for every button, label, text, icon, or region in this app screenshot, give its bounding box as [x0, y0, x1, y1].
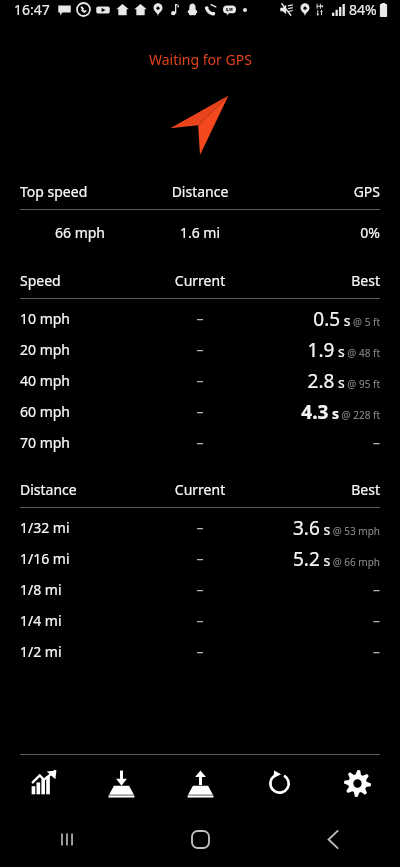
staticText: 1/2 mi	[20, 642, 140, 661]
staticText: 1/16 mi	[20, 549, 140, 568]
button[interactable]: Statistics	[7, 755, 79, 811]
button[interactable]: 20 mph	[20, 334, 380, 365]
staticText: 4.3 s @ 228 ft	[260, 399, 380, 425]
button[interactable]: Export	[164, 755, 236, 811]
staticText: Current	[140, 271, 260, 290]
staticText: –	[140, 611, 260, 630]
staticText: 16:47	[14, 0, 50, 19]
button[interactable]: 1/16 mi	[20, 543, 380, 574]
button[interactable]: 70 mph	[20, 427, 380, 458]
staticText: –	[140, 309, 260, 328]
staticText: –	[140, 642, 260, 661]
staticText: –	[140, 402, 260, 421]
staticText: 10 mph	[20, 309, 140, 328]
staticText: –	[140, 549, 260, 568]
staticText: –	[260, 611, 380, 630]
staticText: Speed	[20, 271, 140, 290]
button[interactable]: 1/32 mi	[20, 512, 380, 543]
staticText: –	[260, 642, 380, 661]
staticText: Top speed	[20, 182, 140, 201]
staticText: Waiting for GPS	[149, 50, 252, 69]
staticText: 0%	[260, 223, 380, 242]
staticText: Best	[260, 271, 380, 290]
button[interactable]: Home	[134, 811, 267, 867]
button[interactable]: Recents	[0, 811, 134, 867]
staticText: GPS	[260, 182, 380, 201]
staticText: Distance	[20, 480, 140, 499]
staticText: 3.6 s @ 53 mph	[260, 515, 380, 541]
staticText: 1.6 mi	[140, 223, 260, 242]
button[interactable]: 1/4 mi	[20, 605, 380, 636]
button[interactable]: 1/8 mi	[20, 574, 380, 605]
button[interactable]: Reset	[243, 755, 315, 811]
staticText: Distance	[140, 182, 260, 201]
staticText: 1.9 s @ 48 ft	[260, 337, 380, 363]
staticText: –	[140, 580, 260, 599]
staticText: –	[260, 580, 380, 599]
button[interactable]: 40 mph	[20, 365, 380, 396]
staticText: –	[140, 371, 260, 390]
staticText: –	[260, 433, 380, 452]
staticText: 66 mph	[20, 223, 140, 242]
staticText: 2.8 s @ 95 ft	[260, 368, 380, 394]
staticText: 5.2 s @ 66 mph	[260, 546, 380, 572]
button[interactable]: 1/2 mi	[20, 636, 380, 667]
staticText: –	[140, 340, 260, 359]
staticText: Current	[140, 480, 260, 499]
staticText: –	[140, 433, 260, 452]
staticText: 1/4 mi	[20, 611, 140, 630]
staticText: 20 mph	[20, 340, 140, 359]
staticText: 0.5 s @ 5 ft	[260, 306, 380, 332]
staticText: Best	[260, 480, 380, 499]
staticText: 60 mph	[20, 402, 140, 421]
staticText: 84%	[349, 0, 377, 19]
staticText: 40 mph	[20, 371, 140, 390]
button[interactable]: 60 mph	[20, 396, 380, 427]
staticText: –	[140, 518, 260, 537]
button[interactable]: Settings	[321, 755, 393, 811]
staticText: 70 mph	[20, 433, 140, 452]
button[interactable]: 10 mph	[20, 303, 380, 334]
button[interactable]: Back	[267, 811, 400, 867]
button[interactable]: Import	[85, 755, 157, 811]
staticText: 1/8 mi	[20, 580, 140, 599]
staticText: 1/32 mi	[20, 518, 140, 537]
